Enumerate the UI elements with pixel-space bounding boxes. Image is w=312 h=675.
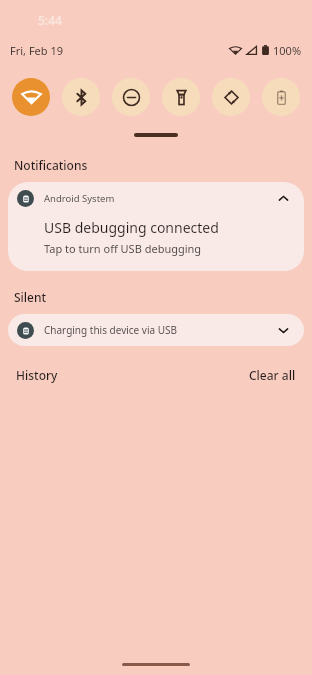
button[interactable]: Android System: [8, 182, 304, 271]
button[interactable]: Battery saver: [262, 78, 300, 116]
button[interactable]: [134, 133, 178, 137]
staticText: Tap to turn off USB debugging: [44, 241, 202, 256]
staticText: USB debugging connected: [44, 218, 219, 237]
staticText: 5:44: [38, 12, 62, 28]
button[interactable]: Clear all: [247, 364, 298, 386]
staticText: 100%: [273, 43, 302, 58]
button[interactable]: Wi-Fi: [12, 78, 50, 116]
staticText: Silent: [14, 289, 47, 305]
button[interactable]: Bluetooth: [62, 78, 100, 116]
button[interactable]: History: [14, 364, 60, 386]
button[interactable]: Charging this device via USB: [8, 314, 304, 346]
staticText: Notifications: [14, 157, 88, 173]
staticText: Fri, Feb 19: [10, 43, 64, 58]
button[interactable]: Do not disturb: [112, 78, 150, 116]
staticText: Clear all: [249, 367, 296, 383]
staticText: Android System: [44, 192, 115, 205]
staticText: History: [16, 367, 58, 383]
staticText: Charging this device via USB: [44, 323, 178, 337]
button[interactable]: Expand notification: [272, 319, 294, 341]
button[interactable]: Auto rotate: [212, 78, 250, 116]
button[interactable]: Flashlight: [162, 78, 200, 116]
button[interactable]: Collapse notification: [272, 187, 294, 209]
